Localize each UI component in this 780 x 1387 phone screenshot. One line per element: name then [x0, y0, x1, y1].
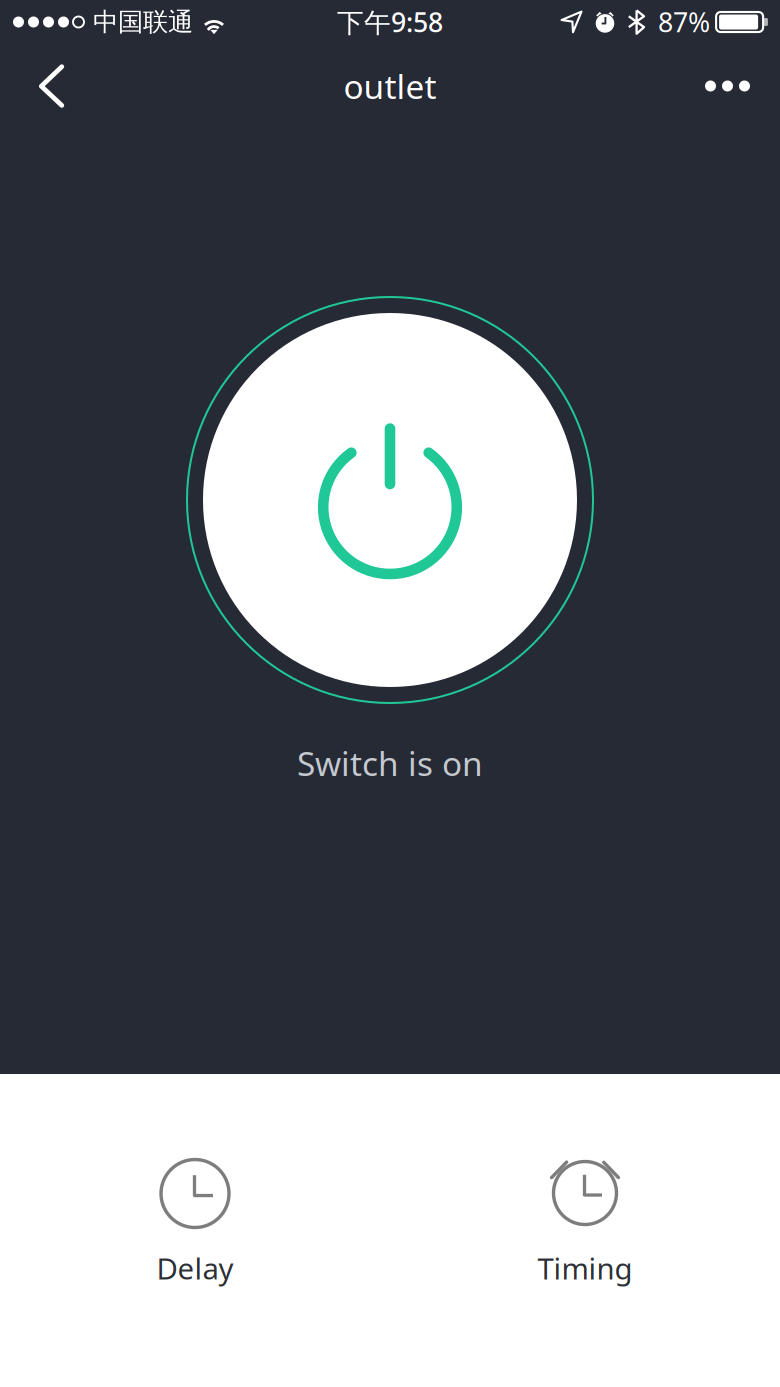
- staticText: Timing: [537, 1248, 632, 1287]
- button[interactable]: More options: [675, 47, 780, 125]
- staticText: Delay: [156, 1248, 233, 1287]
- button[interactable]: Power toggle, switch is on: [187, 297, 593, 703]
- button[interactable]: Back: [0, 47, 94, 125]
- staticText: 下午9:58: [337, 4, 443, 40]
- staticText: 87%: [658, 4, 710, 40]
- staticText: outlet: [343, 64, 436, 108]
- staticText: 中国联通: [93, 6, 193, 37]
- button[interactable]: Delay: [85, 1133, 305, 1303]
- staticText: Switch is on: [297, 741, 483, 785]
- button[interactable]: Timing: [475, 1133, 695, 1303]
